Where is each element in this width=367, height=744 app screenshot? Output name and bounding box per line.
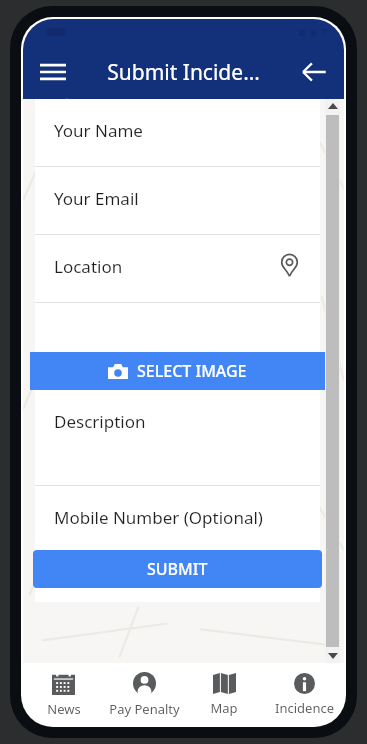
button[interactable]: Back — [290, 48, 338, 96]
button[interactable]: Your Email — [35, 167, 320, 234]
staticText: Location — [54, 255, 123, 278]
staticText: Description — [54, 410, 146, 433]
staticText: Mobile Number (Optional) — [54, 506, 263, 529]
staticText: Your Email — [54, 187, 139, 210]
staticText: Incidence — [275, 699, 334, 717]
button[interactable]: Location — [35, 235, 320, 302]
staticText: SELECT IMAGE — [137, 360, 247, 382]
button[interactable]: SUBMIT — [33, 550, 322, 588]
button[interactable]: SELECT IMAGE — [30, 352, 325, 390]
staticText: Your Name — [54, 119, 143, 142]
button[interactable]: Open navigation menu — [29, 48, 77, 96]
button[interactable]: Pay Penalty — [104, 663, 184, 725]
staticText: SUBMIT — [147, 558, 208, 580]
button[interactable]: Description — [35, 390, 320, 485]
staticText: Submit Incide… — [107, 58, 260, 87]
button[interactable]: Your Name — [35, 99, 320, 166]
button[interactable]: Scroll up — [325, 99, 340, 113]
staticText: News — [47, 700, 81, 718]
button[interactable]: Mobile Number (Optional) — [35, 486, 320, 546]
button[interactable]: News — [23, 663, 104, 725]
button[interactable]: Map — [184, 663, 264, 725]
button[interactable]: Incidence — [264, 663, 344, 725]
button[interactable]: Pick location — [272, 247, 306, 281]
button[interactable]: Scroll down — [325, 649, 340, 663]
staticText: Map — [210, 699, 238, 717]
staticText: Pay Penalty — [109, 700, 180, 718]
